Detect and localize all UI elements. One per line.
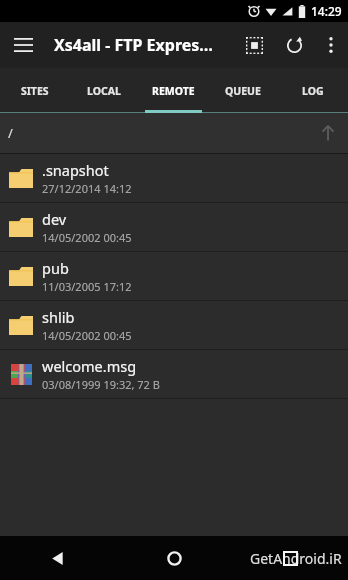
button[interactable]: shlib <box>0 301 348 349</box>
staticText: LOG <box>302 84 324 98</box>
button[interactable]: dev <box>0 203 348 251</box>
staticText: 14/05/2002 00:45 <box>42 230 132 245</box>
button[interactable]: Select all <box>234 25 274 65</box>
button[interactable]: Up one level <box>308 113 348 153</box>
button[interactable]: LOCAL <box>69 68 138 113</box>
staticText: REMOTE <box>152 84 195 98</box>
staticText: / <box>8 124 13 142</box>
staticText: welcome.msg <box>42 356 137 376</box>
staticText: 27/12/2014 14:12 <box>42 181 132 196</box>
button[interactable]: Home <box>116 536 232 580</box>
button[interactable]: welcome.msg <box>0 350 348 398</box>
staticText: 03/08/1999 19:32, 72 B <box>42 377 160 392</box>
staticText: 11/03/2005 17:12 <box>42 279 132 294</box>
staticText: LOCAL <box>87 84 121 98</box>
button[interactable]: Refresh <box>274 25 314 65</box>
button[interactable]: QUEUE <box>208 68 278 113</box>
button[interactable]: Recent apps <box>232 536 348 580</box>
staticText: SITES <box>21 84 49 98</box>
button[interactable]: Open navigation drawer <box>0 22 46 68</box>
staticText: QUEUE <box>225 84 261 98</box>
staticText: GetAndroid.iR <box>250 549 342 568</box>
staticText: 14/05/2002 00:45 <box>42 328 132 343</box>
button[interactable]: Back <box>0 536 116 580</box>
staticText: pub <box>42 258 69 278</box>
button[interactable]: More options <box>314 28 348 62</box>
staticText: dev <box>42 209 67 229</box>
button[interactable]: LOG <box>278 68 348 113</box>
staticText: 14:29 <box>311 3 342 19</box>
staticText: shlib <box>42 307 75 327</box>
staticText: .snapshot <box>42 160 109 180</box>
button[interactable]: REMOTE <box>138 68 208 113</box>
button[interactable]: pub <box>0 252 348 300</box>
button[interactable]: .snapshot <box>0 154 348 202</box>
button[interactable]: SITES <box>0 68 69 113</box>
staticText: Xs4all - FTP Expres… <box>54 34 234 56</box>
